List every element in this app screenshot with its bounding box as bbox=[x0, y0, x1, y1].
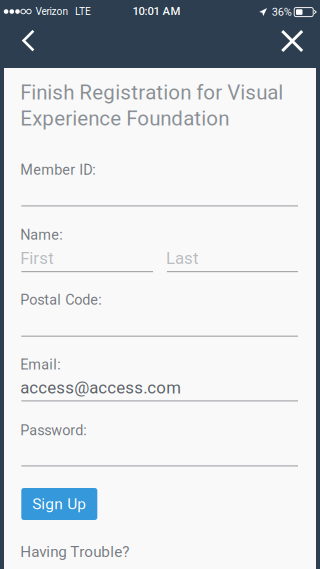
staticText: First bbox=[20, 248, 53, 268]
staticText: Name: bbox=[20, 226, 62, 243]
staticText: Last bbox=[166, 248, 198, 268]
staticText: access@access.com bbox=[20, 378, 181, 397]
staticText: Experience Foundation bbox=[20, 107, 229, 131]
staticText: 10:01 AM bbox=[132, 5, 180, 18]
button[interactable]: Sign Up bbox=[21, 488, 97, 520]
staticText: Password: bbox=[20, 422, 86, 439]
button[interactable]: Back bbox=[7, 20, 49, 62]
button[interactable]: Having Trouble? bbox=[20, 543, 129, 561]
staticText: Email: bbox=[20, 356, 60, 373]
staticText: Having Trouble? bbox=[20, 543, 129, 561]
staticText: LTE bbox=[75, 6, 91, 17]
staticText: Postal Code: bbox=[20, 291, 101, 308]
staticText: Verizon bbox=[35, 6, 68, 17]
staticText: 36% bbox=[272, 6, 292, 19]
staticText: Member ID: bbox=[20, 161, 95, 178]
button[interactable]: Close bbox=[271, 20, 313, 62]
staticText: Finish Registration for Visual bbox=[20, 80, 283, 105]
staticText: Sign Up bbox=[32, 495, 86, 513]
